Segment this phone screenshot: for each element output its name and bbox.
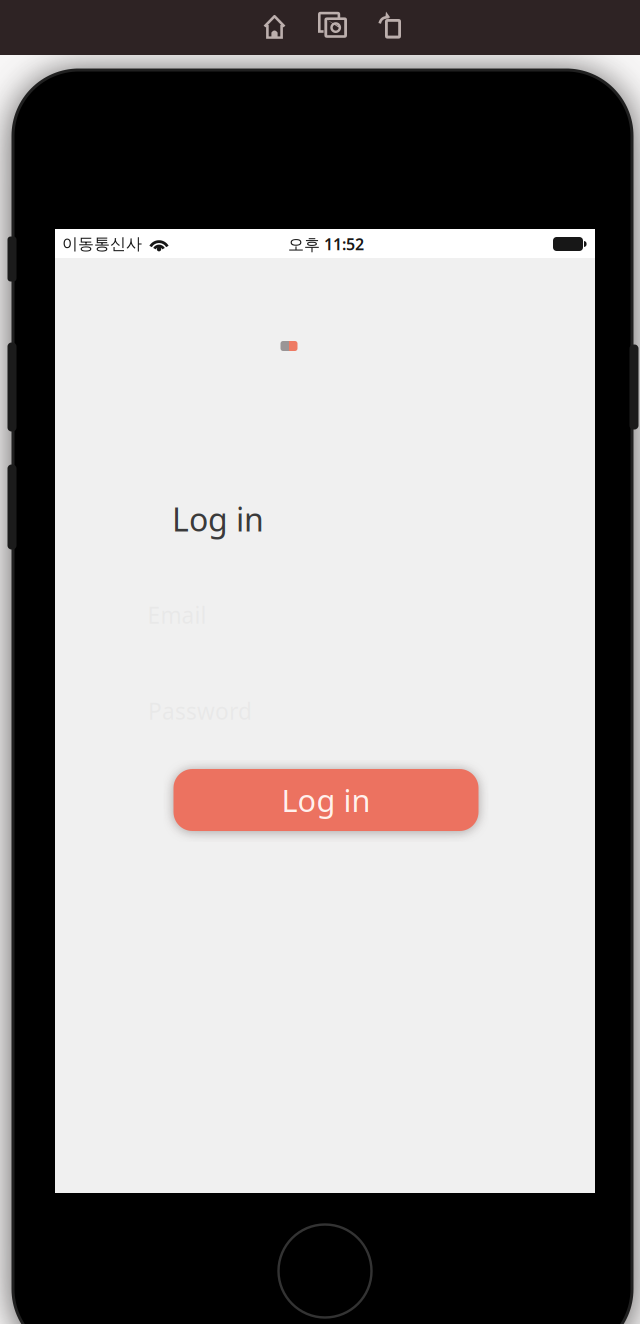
staticText: 이동통신사 [62, 234, 142, 254]
staticText: Log in [172, 498, 264, 540]
button[interactable]: Home [263, 13, 286, 39]
staticText: 오후 11:52 [288, 233, 364, 255]
staticText: Log in [281, 780, 370, 820]
button[interactable]: Screenshot [318, 11, 347, 38]
button[interactable]: Log in [173, 769, 478, 831]
button[interactable]: Rotate [378, 11, 402, 39]
